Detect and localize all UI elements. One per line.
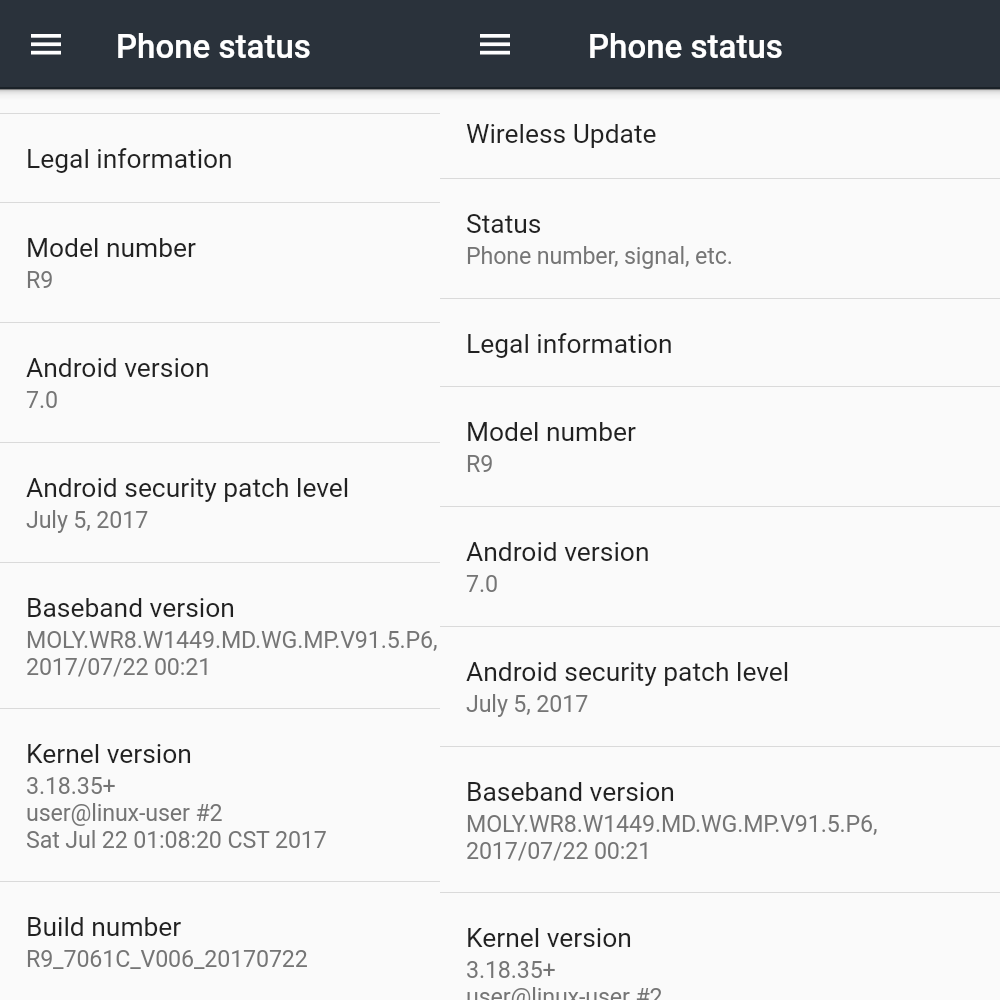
staticText: Legal information (466, 329, 673, 360)
staticText: Status (466, 209, 542, 240)
staticText: Model number (466, 417, 636, 448)
staticText: Android security patch level (26, 473, 350, 504)
staticText: Android version (26, 353, 210, 384)
staticText: 2017/07/22 00:21 (466, 837, 652, 864)
button[interactable]: Build number (0, 882, 440, 1000)
staticText: 3.18.35+ (466, 956, 556, 983)
staticText: Legal information (26, 144, 233, 175)
staticText: R9_7061C_V006_20170722 (26, 945, 308, 972)
staticText: user@linux-user #2 (466, 983, 663, 1000)
staticText: 7.0 (26, 386, 58, 413)
button[interactable]: Model number (440, 387, 1000, 506)
staticText: MOLY.WR8.W1449.MD.WG.MP.V91.5.P6, (26, 626, 438, 653)
staticText: Model number (26, 233, 196, 264)
staticText: 2017/07/22 00:21 (26, 653, 212, 680)
staticText: Sat Jul 22 01:08:20 CST 2017 (26, 826, 327, 853)
staticText: Build number (26, 912, 182, 943)
staticText: Phone status (588, 27, 783, 66)
button[interactable]: Baseband version (0, 563, 440, 708)
staticText: Android version (466, 537, 650, 568)
staticText: Wireless Update (466, 119, 657, 150)
button[interactable]: Open navigation menu (471, 20, 519, 68)
button[interactable]: Wireless Update (440, 89, 1000, 178)
button[interactable]: Model number (0, 203, 440, 322)
staticText: July 5, 2017 (26, 506, 149, 533)
staticText: R9 (466, 450, 494, 477)
button[interactable]: Open navigation menu (22, 20, 70, 68)
staticText: R9 (26, 266, 54, 293)
staticText: Phone status (116, 27, 311, 66)
staticText: 7.0 (466, 570, 498, 597)
staticText: user@linux-user #2 (26, 799, 223, 826)
staticText: Baseband version (26, 593, 235, 624)
button[interactable]: Android security patch level (0, 443, 440, 562)
staticText: Baseband version (466, 777, 675, 808)
staticText: Kernel version (466, 923, 632, 954)
staticText: 3.18.35+ (26, 772, 116, 799)
button[interactable]: Android version (0, 323, 440, 442)
button[interactable]: Legal information (0, 114, 440, 202)
staticText: Android security patch level (466, 657, 790, 688)
button[interactable]: Android security patch level (440, 627, 1000, 746)
button[interactable]: Kernel version (0, 709, 440, 881)
staticText: Phone number, signal, etc. (466, 242, 733, 269)
button[interactable]: Legal information (440, 299, 1000, 386)
button[interactable]: Kernel version (440, 893, 1000, 1000)
button[interactable]: Baseband version (440, 747, 1000, 892)
button[interactable]: Status (440, 179, 1000, 298)
staticText: July 5, 2017 (466, 690, 589, 717)
staticText: MOLY.WR8.W1449.MD.WG.MP.V91.5.P6, (466, 810, 878, 837)
staticText: Kernel version (26, 739, 192, 770)
button[interactable]: Android version (440, 507, 1000, 626)
